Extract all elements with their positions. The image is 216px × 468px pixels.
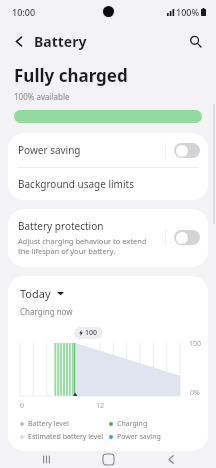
button[interactable]: Home bbox=[91, 451, 125, 468]
staticText: 100 bbox=[189, 339, 202, 349]
staticText: 100% available bbox=[14, 91, 70, 102]
button[interactable]: Back bbox=[6, 28, 32, 54]
button[interactable]: Background usage limits bbox=[8, 168, 208, 200]
button[interactable]: Toggle bbox=[174, 230, 200, 245]
staticText: Charging bbox=[117, 419, 148, 429]
staticText: Battery protection bbox=[18, 219, 104, 233]
button[interactable]: Recents bbox=[29, 451, 63, 468]
button[interactable]: Search bbox=[182, 28, 208, 54]
button[interactable]: Today bbox=[18, 285, 66, 302]
staticText: Power saving bbox=[18, 143, 165, 157]
staticText: 100% bbox=[176, 6, 200, 18]
button[interactable]: Battery protection bbox=[8, 209, 208, 267]
staticText: Battery bbox=[34, 32, 87, 51]
staticText: 10:00 bbox=[12, 6, 36, 18]
button[interactable]: Power saving bbox=[8, 133, 208, 167]
staticText: Today bbox=[20, 286, 51, 301]
button[interactable]: Back bbox=[154, 451, 188, 468]
staticText: Background usage limits bbox=[18, 177, 134, 191]
button[interactable]: Toggle bbox=[174, 143, 200, 158]
staticText: 100 bbox=[85, 328, 98, 338]
staticText: 0 bbox=[20, 401, 25, 411]
staticText: 0% bbox=[190, 388, 200, 398]
staticText: Charging now bbox=[20, 306, 73, 317]
staticText: Fully charged bbox=[14, 64, 128, 87]
staticText: Power saving bbox=[117, 432, 161, 442]
staticText: Estimated battery level bbox=[28, 432, 104, 442]
staticText: 12 bbox=[96, 401, 105, 411]
staticText: Battery level bbox=[28, 419, 69, 429]
staticText: Adjust charging behaviour to extend the … bbox=[18, 236, 159, 256]
